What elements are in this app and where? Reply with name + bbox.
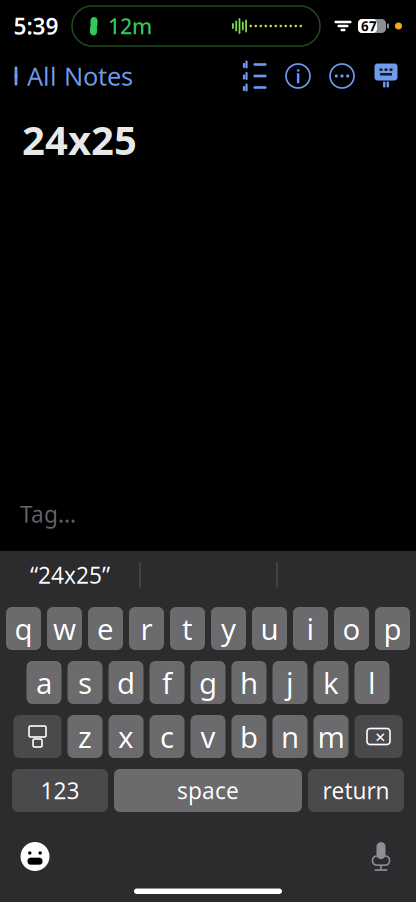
- staticText: t: [182, 609, 193, 648]
- button[interactable]: Dictate: [354, 834, 408, 878]
- button[interactable]: p: [375, 607, 410, 650]
- button[interactable]: k: [313, 661, 348, 704]
- staticText: 5:39: [13, 11, 58, 41]
- button[interactable]: r: [129, 607, 164, 650]
- button[interactable]: All Notes: [0, 51, 133, 101]
- staticText: 67: [361, 17, 377, 35]
- staticText: Tag...: [20, 499, 76, 529]
- button[interactable]: j: [272, 661, 307, 704]
- button[interactable]: u: [252, 607, 287, 650]
- staticText: p: [383, 609, 401, 648]
- button[interactable]: m: [313, 715, 348, 758]
- staticText: s: [78, 663, 92, 702]
- button[interactable]: h: [231, 661, 266, 704]
- staticText: x: [118, 717, 134, 756]
- staticText: 12m: [108, 12, 152, 40]
- staticText: o: [342, 609, 360, 648]
- staticText: ×: [375, 724, 386, 749]
- button[interactable]: Note Info: [276, 56, 320, 96]
- staticText: d: [117, 663, 135, 702]
- button[interactable]: return: [308, 769, 404, 812]
- button[interactable]: Checklist: [232, 56, 276, 96]
- button[interactable]: g: [190, 661, 225, 704]
- staticText: a: [36, 663, 52, 702]
- button[interactable]: v: [190, 715, 225, 758]
- staticText: return: [322, 775, 389, 805]
- staticText: h: [240, 663, 258, 702]
- staticText: 123: [40, 775, 79, 805]
- staticText: z: [78, 717, 92, 756]
- staticText: k: [323, 663, 339, 702]
- button[interactable]: x: [108, 715, 143, 758]
- staticText: f: [162, 663, 172, 702]
- button[interactable]: Delete: [354, 715, 402, 758]
- button[interactable]: y: [211, 607, 246, 650]
- button[interactable]: f: [149, 661, 184, 704]
- staticText: b: [240, 717, 258, 756]
- button[interactable]: t: [170, 607, 205, 650]
- staticText: space: [177, 775, 239, 805]
- staticText: v: [200, 717, 215, 756]
- button[interactable]: More: [320, 56, 364, 96]
- staticText: n: [281, 717, 299, 756]
- button[interactable]: “24x25”: [0, 553, 139, 597]
- button[interactable]: s: [67, 661, 102, 704]
- button[interactable]: Emoji: [8, 834, 62, 878]
- staticText: All Notes: [27, 59, 133, 93]
- staticText: e: [97, 609, 114, 648]
- staticText: w: [53, 609, 76, 648]
- button[interactable]: Shift: [13, 715, 61, 758]
- staticText: q: [14, 609, 32, 648]
- staticText: l: [368, 663, 376, 702]
- button[interactable]: l: [354, 661, 389, 704]
- staticText: g: [199, 663, 217, 702]
- staticText: c: [160, 717, 174, 756]
- button[interactable]: Hide Keyboard: [364, 56, 408, 96]
- button[interactable]: w: [47, 607, 82, 650]
- button[interactable]: 123: [12, 769, 108, 812]
- button[interactable]: q: [6, 607, 41, 650]
- button[interactable]: z: [67, 715, 102, 758]
- staticText: i: [306, 609, 314, 648]
- button[interactable]: space: [114, 769, 302, 812]
- staticText: 24x25: [22, 113, 137, 166]
- button[interactable]: b: [231, 715, 266, 758]
- button[interactable]: c: [149, 715, 184, 758]
- staticText: y: [221, 609, 236, 648]
- button[interactable]: i: [293, 607, 328, 650]
- button[interactable]: d: [108, 661, 143, 704]
- button[interactable]: e: [88, 607, 123, 650]
- staticText: m: [317, 717, 344, 756]
- staticText: “24x25”: [30, 560, 110, 590]
- button[interactable]: a: [26, 661, 61, 704]
- button[interactable]: n: [272, 715, 307, 758]
- staticText: u: [260, 609, 278, 648]
- staticText: j: [286, 663, 294, 702]
- button[interactable]: o: [334, 607, 369, 650]
- staticText: r: [140, 609, 152, 648]
- staticText: i: [295, 64, 300, 88]
